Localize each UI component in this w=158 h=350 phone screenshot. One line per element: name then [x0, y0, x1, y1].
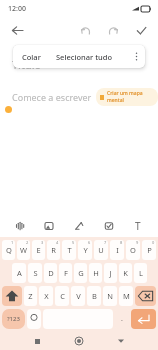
button[interactable]: G — [74, 263, 87, 283]
staticText: 3 — [41, 240, 44, 245]
staticText: A — [17, 268, 22, 278]
button[interactable]: J — [104, 263, 117, 283]
button[interactable]: R — [47, 240, 60, 260]
staticText: 7 — [104, 240, 107, 245]
button[interactable]: More options — [127, 45, 145, 68]
button[interactable]: W — [17, 240, 30, 260]
button[interactable]: N — [103, 286, 117, 306]
button[interactable]: U — [94, 240, 108, 260]
staticText: G — [78, 268, 84, 278]
staticText: Criar um mapa mental — [107, 90, 154, 104]
staticText: R — [51, 245, 56, 255]
button[interactable]: Hide keyboard — [111, 332, 131, 350]
staticText: T — [135, 219, 141, 233]
staticText: B — [92, 291, 97, 301]
button[interactable]: Draw — [69, 216, 89, 236]
staticText: L — [139, 268, 143, 278]
button[interactable]: Enter — [131, 309, 156, 329]
staticText: W — [20, 245, 27, 255]
staticText: 2 — [26, 240, 29, 245]
staticText: 4 — [56, 240, 59, 245]
button[interactable]: Recents — [27, 332, 47, 350]
staticText: E — [36, 245, 41, 255]
staticText: N — [107, 291, 113, 301]
button[interactable]: X — [39, 286, 53, 306]
button[interactable]: S — [28, 263, 42, 283]
button[interactable]: Checklist — [99, 216, 119, 236]
button[interactable]: Undo — [74, 19, 96, 41]
staticText: Z — [28, 291, 33, 301]
button[interactable]: Criar um mapa mental — [96, 88, 158, 106]
button[interactable]: B — [87, 286, 101, 306]
button[interactable]: Emoji — [27, 309, 41, 329]
staticText: . — [121, 314, 123, 324]
button[interactable]: ?123 — [2, 309, 25, 329]
button[interactable]: A — [12, 263, 26, 283]
button[interactable]: H — [89, 263, 102, 283]
staticText: 1 — [11, 240, 14, 245]
staticText: M — [123, 291, 130, 301]
button[interactable]: F — [59, 263, 72, 283]
staticText: H — [93, 268, 99, 278]
button[interactable]: Save — [130, 19, 152, 41]
staticText: T — [67, 245, 72, 255]
staticText: Y — [83, 245, 88, 255]
button[interactable]: D — [44, 263, 57, 283]
button[interactable]: Redo — [102, 19, 124, 41]
staticText: V — [76, 291, 81, 301]
button[interactable]: V — [71, 286, 85, 306]
button[interactable]: T — [128, 216, 148, 236]
staticText: F — [64, 268, 68, 278]
button[interactable]: L — [134, 263, 147, 283]
button[interactable]: Back — [6, 19, 28, 41]
button[interactable]: Y — [78, 240, 92, 260]
button[interactable]: Z — [24, 286, 37, 306]
button[interactable]: Selecionar tudo — [50, 47, 118, 67]
button[interactable]: Home — [69, 332, 89, 350]
staticText: U — [98, 245, 104, 255]
staticText: 8 — [120, 240, 123, 245]
staticText: Título — [12, 57, 42, 72]
button[interactable]: Audio — [10, 216, 30, 236]
staticText: X — [44, 291, 49, 301]
button[interactable]: K — [119, 263, 132, 283]
staticText: 0 — [152, 240, 155, 245]
staticText: C — [60, 291, 65, 301]
staticText: I — [116, 245, 119, 255]
button[interactable]: O — [126, 240, 140, 260]
button[interactable]: Shift — [2, 286, 22, 306]
button[interactable]: Q — [2, 240, 15, 260]
button[interactable]: P — [142, 240, 156, 260]
staticText: D — [48, 268, 54, 278]
staticText: 9 — [136, 240, 139, 245]
button[interactable]: I — [110, 240, 124, 260]
staticText: Q — [6, 245, 12, 255]
button[interactable]: E — [32, 240, 45, 260]
staticText: O — [130, 245, 136, 255]
button[interactable]: Backspace — [135, 286, 156, 306]
staticText: K — [123, 268, 128, 278]
staticText: S — [33, 268, 38, 278]
staticText: Colar — [22, 52, 41, 62]
staticText: 12:00 — [8, 4, 26, 14]
staticText: Selecionar tudo — [56, 52, 112, 62]
staticText: P — [147, 245, 152, 255]
staticText: ?123 — [7, 315, 20, 323]
button[interactable]: Insert image — [39, 216, 59, 236]
staticText: 5 — [72, 240, 75, 245]
button[interactable]: . — [115, 309, 129, 329]
staticText: J — [109, 268, 112, 278]
staticText: Comece a escrever — [12, 91, 92, 103]
button[interactable]: M — [119, 286, 133, 306]
button[interactable]: Colar — [13, 47, 50, 67]
button[interactable]: T — [62, 240, 76, 260]
staticText: 6 — [88, 240, 91, 245]
button[interactable]: C — [55, 286, 69, 306]
